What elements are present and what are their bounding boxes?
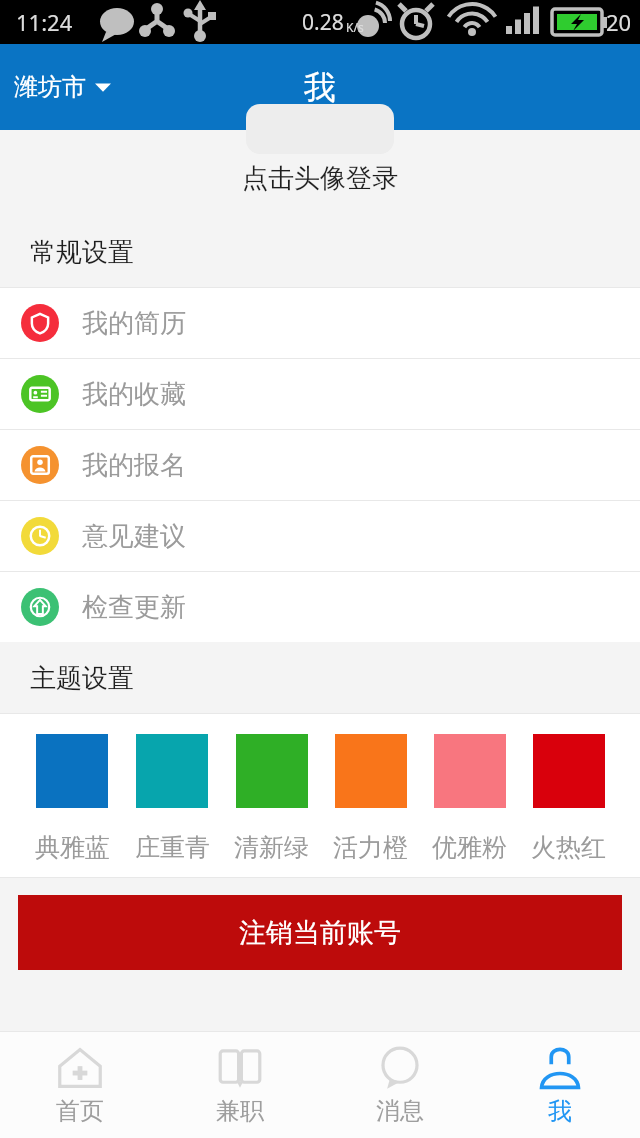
staticText: 兼职 bbox=[216, 1096, 264, 1126]
button[interactable]: 点击头像登录 bbox=[242, 162, 398, 195]
staticText: 我 bbox=[548, 1096, 572, 1126]
staticText: 检查更新 bbox=[82, 591, 186, 624]
button[interactable]: 我的收藏 bbox=[0, 358, 640, 429]
staticText: 活力橙 bbox=[333, 832, 408, 863]
button[interactable]: 火热红 bbox=[519, 734, 618, 863]
staticText: 意见建议 bbox=[82, 520, 186, 553]
staticText: 注销当前账号 bbox=[239, 916, 401, 950]
staticText: 典雅蓝 bbox=[35, 832, 110, 863]
button[interactable]: 我 bbox=[480, 1032, 640, 1138]
staticText: 首页 bbox=[56, 1096, 104, 1126]
staticText: 清新绿 bbox=[234, 832, 309, 863]
staticText: 主题设置 bbox=[30, 662, 134, 695]
button[interactable]: 潍坊市 bbox=[0, 62, 123, 112]
staticText: 20 bbox=[606, 7, 632, 37]
staticText: 0.28 bbox=[302, 8, 344, 37]
button[interactable]: 优雅粉 bbox=[420, 734, 519, 863]
button[interactable]: 意见建议 bbox=[0, 500, 640, 571]
button[interactable]: 兼职 bbox=[160, 1032, 320, 1138]
staticText: 优雅粉 bbox=[432, 832, 507, 863]
button[interactable]: 检查更新 bbox=[0, 571, 640, 642]
button[interactable]: 消息 bbox=[320, 1032, 480, 1138]
staticText: 我的报名 bbox=[82, 449, 186, 482]
button[interactable]: 首页 bbox=[0, 1032, 160, 1138]
staticText: 我的收藏 bbox=[82, 378, 186, 411]
staticText: 消息 bbox=[376, 1096, 424, 1126]
staticText: 11:24 bbox=[16, 7, 73, 37]
button[interactable]: 庄重青 bbox=[122, 734, 222, 863]
staticText: 常规设置 bbox=[30, 236, 134, 269]
button[interactable]: 我的报名 bbox=[0, 429, 640, 500]
button[interactable]: 头像登录 bbox=[246, 104, 394, 154]
staticText: 火热红 bbox=[531, 832, 606, 863]
button[interactable]: 我的简历 bbox=[0, 287, 640, 358]
button[interactable]: 注销当前账号 bbox=[18, 895, 622, 970]
staticText: 我的简历 bbox=[82, 307, 186, 340]
button[interactable]: 活力橙 bbox=[321, 734, 420, 863]
staticText: 潍坊市 bbox=[14, 72, 86, 102]
staticText: 庄重青 bbox=[135, 832, 210, 863]
staticText: 我 bbox=[304, 67, 336, 107]
staticText: K/s bbox=[346, 19, 364, 35]
button[interactable]: 清新绿 bbox=[222, 734, 321, 863]
button[interactable]: 典雅蓝 bbox=[22, 734, 122, 863]
